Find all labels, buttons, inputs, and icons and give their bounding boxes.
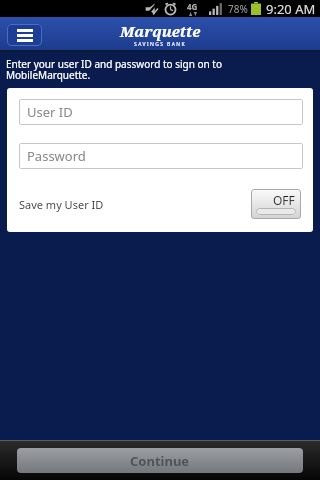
staticText: OFF bbox=[273, 192, 295, 208]
staticText: Enter your user ID and password to sign … bbox=[6, 57, 222, 82]
staticText: Marquette bbox=[120, 21, 201, 41]
button[interactable]: User ID bbox=[19, 99, 303, 125]
button[interactable]: OFF bbox=[251, 189, 301, 219]
staticText: SAVINGS BANK bbox=[134, 41, 187, 48]
button[interactable] bbox=[7, 24, 42, 46]
button[interactable]: Continue bbox=[17, 448, 303, 473]
staticText: 9:20 AM bbox=[266, 0, 316, 17]
staticText: User ID bbox=[27, 103, 73, 121]
staticText: Save my User ID bbox=[19, 197, 104, 212]
staticText: 4G bbox=[187, 1, 198, 12]
staticText: Continue bbox=[130, 452, 190, 470]
staticText: 78% bbox=[228, 2, 248, 16]
button[interactable]: Password bbox=[19, 143, 303, 169]
staticText: Password bbox=[27, 147, 86, 165]
